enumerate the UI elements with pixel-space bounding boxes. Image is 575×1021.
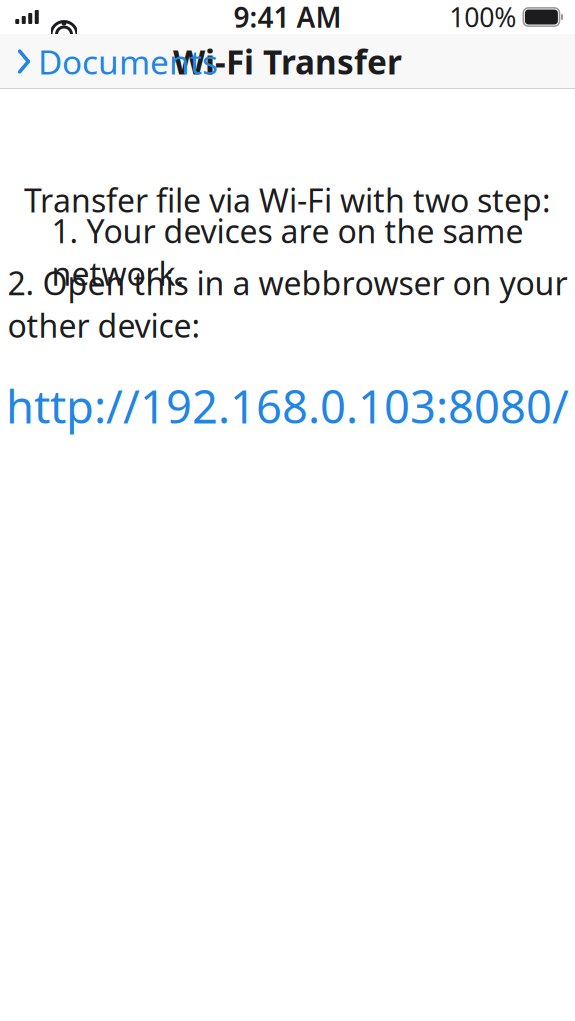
staticText: 100%: [449, 0, 516, 35]
button[interactable]: http://192.168.0.103:8080/: [0, 383, 575, 429]
staticText: 9:41 AM: [233, 0, 341, 36]
staticText: http://192.168.0.103:8080/: [6, 376, 569, 436]
staticText: 2. Open this in a webbrowser on your oth…: [7, 261, 567, 346]
staticText: Documents: [38, 39, 218, 84]
staticText: Wi-Fi Transfer: [173, 39, 402, 84]
staticText: Transfer file via Wi-Fi with two step:: [24, 179, 551, 221]
staticText: 1. Your devices are on the same network.: [51, 209, 523, 294]
button[interactable]: Documents: [0, 34, 228, 88]
